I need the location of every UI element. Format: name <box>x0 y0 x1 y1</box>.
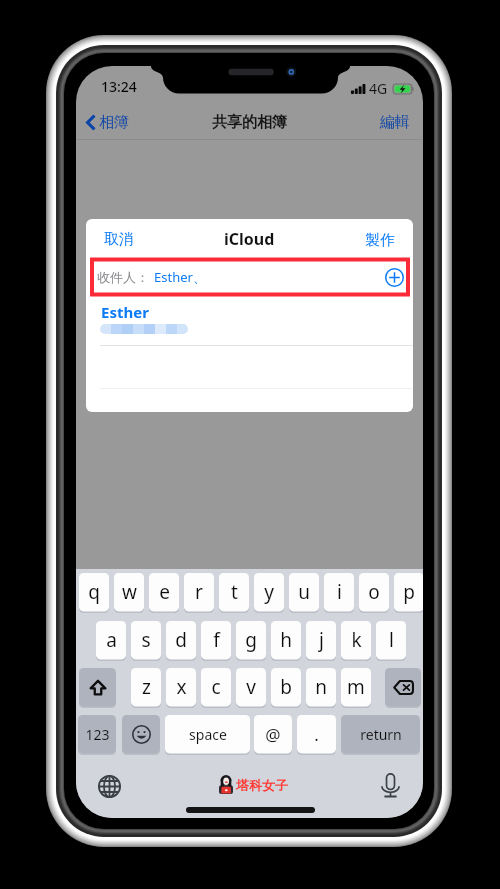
staticText: t <box>231 579 238 605</box>
staticText: w <box>122 579 137 605</box>
button[interactable]: Add recipient <box>385 268 404 287</box>
staticText: 共享的相簿 <box>212 113 287 132</box>
button[interactable]: h <box>271 621 301 661</box>
button[interactable]: Shift <box>79 668 116 708</box>
staticText: Esther <box>101 302 149 322</box>
staticText: 123 <box>85 725 110 744</box>
button[interactable]: . <box>297 715 336 755</box>
button[interactable]: 相簿 <box>82 109 133 136</box>
button[interactable]: q <box>79 573 109 613</box>
button[interactable]: r <box>184 573 214 613</box>
button[interactable]: o <box>359 573 389 613</box>
staticText: d <box>175 627 187 653</box>
staticText: space <box>189 725 227 744</box>
staticText: p <box>403 579 415 605</box>
staticText: b <box>280 674 292 700</box>
button[interactable]: y <box>254 573 284 613</box>
button[interactable]: x <box>166 668 196 708</box>
button[interactable]: s <box>131 621 161 661</box>
button[interactable]: j <box>306 621 336 661</box>
button[interactable]: 編輯 <box>376 109 414 136</box>
button[interactable]: e <box>149 573 179 613</box>
staticText: k <box>351 627 362 653</box>
staticText: u <box>298 579 310 605</box>
staticText: z <box>142 674 151 700</box>
staticText: m <box>347 674 365 700</box>
staticText: s <box>141 627 151 653</box>
button[interactable]: Backspace <box>385 668 421 708</box>
button[interactable]: Dictation <box>381 773 400 799</box>
staticText: return <box>360 725 402 744</box>
button[interactable]: v <box>236 668 266 708</box>
button[interactable]: b <box>271 668 301 708</box>
button[interactable]: w <box>114 573 144 613</box>
button[interactable]: 製作 <box>359 226 401 255</box>
staticText: o <box>368 579 380 605</box>
staticText: q <box>88 579 100 605</box>
staticText: j <box>319 627 324 653</box>
button[interactable]: z <box>131 668 161 708</box>
staticText: 13:24 <box>101 77 137 96</box>
staticText: g <box>245 627 257 653</box>
button[interactable]: Change keyboard <box>98 775 121 798</box>
staticText: x <box>176 674 187 700</box>
button[interactable]: k <box>341 621 371 661</box>
staticText: h <box>280 627 292 653</box>
button[interactable]: Emoji keyboard <box>122 715 160 755</box>
button[interactable]: l <box>376 621 406 661</box>
button[interactable]: n <box>306 668 336 708</box>
staticText: a <box>106 627 117 653</box>
staticText: v <box>246 674 256 700</box>
staticText: r <box>195 579 203 605</box>
button[interactable]: return <box>341 715 420 755</box>
button[interactable]: @ <box>254 715 292 755</box>
staticText: 4G <box>369 79 388 98</box>
button[interactable]: Esther <box>86 301 413 339</box>
staticText: 相簿 <box>99 113 129 132</box>
staticText: i <box>337 579 342 605</box>
staticText: y <box>264 579 274 605</box>
staticText: e <box>159 579 170 605</box>
staticText: iCloud <box>224 228 275 250</box>
button[interactable]: c <box>201 668 231 708</box>
staticText: Esther、 <box>154 268 206 286</box>
button[interactable]: u <box>289 573 319 613</box>
button[interactable]: space <box>165 715 250 755</box>
button[interactable]: 123 <box>78 715 116 755</box>
staticText: @ <box>265 723 281 746</box>
staticText: c <box>211 674 221 700</box>
button[interactable]: t <box>219 573 249 613</box>
staticText: n <box>315 674 327 700</box>
staticText: f <box>213 627 220 653</box>
button[interactable]: m <box>341 668 371 708</box>
button[interactable]: 取消 <box>98 225 140 254</box>
button[interactable]: g <box>236 621 266 661</box>
staticText: l <box>389 627 394 653</box>
staticText: 塔科女子 <box>236 777 288 793</box>
button[interactable]: p <box>394 573 423 613</box>
button[interactable]: d <box>166 621 196 661</box>
staticText: 收件人： <box>97 269 149 285</box>
button[interactable]: a <box>96 621 126 661</box>
button[interactable]: i <box>324 573 354 613</box>
staticText: . <box>314 723 319 746</box>
button[interactable]: f <box>201 621 231 661</box>
